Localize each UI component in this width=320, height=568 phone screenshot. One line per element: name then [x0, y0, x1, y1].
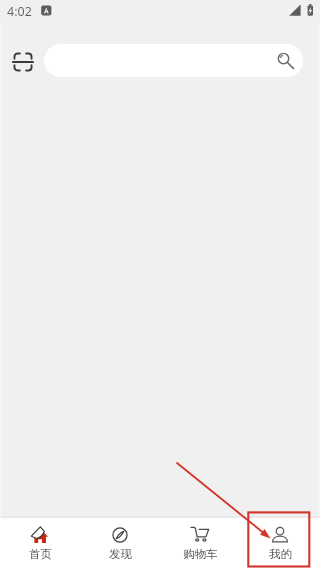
button[interactable]: Scan code — [10, 49, 35, 74]
button[interactable]: 购物车 — [160, 518, 240, 568]
other: Search — [277, 52, 294, 69]
button[interactable]: 发现 — [80, 518, 160, 568]
button[interactable]: 我的 — [240, 518, 320, 568]
staticText: 购物车 — [183, 547, 218, 561]
staticText: 首页 — [29, 547, 52, 561]
button[interactable]: Search — [44, 44, 303, 77]
staticText: 我的 — [269, 547, 292, 561]
staticText: 发现 — [109, 547, 132, 561]
button[interactable]: 首页 — [0, 518, 80, 568]
staticText: 4:02 — [7, 3, 32, 20]
